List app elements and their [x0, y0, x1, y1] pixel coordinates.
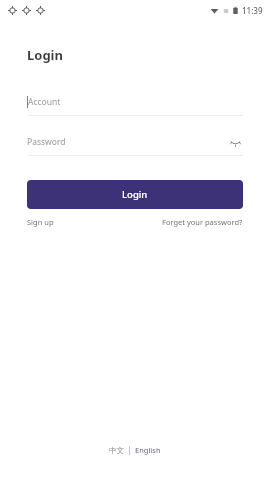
staticText: 中文	[109, 446, 124, 455]
button[interactable]: Sign up	[27, 217, 54, 227]
staticText: 11:39	[242, 5, 263, 16]
staticText: Sign up	[27, 217, 54, 227]
staticText: English	[135, 445, 161, 455]
button[interactable]: Login	[27, 180, 243, 209]
staticText: Login	[27, 46, 63, 64]
staticText: Forget your password?	[162, 217, 243, 227]
button[interactable]: Show password	[227, 134, 243, 150]
staticText: Password	[27, 136, 66, 148]
staticText: Account	[28, 96, 61, 108]
button[interactable]: 中文	[104, 446, 129, 455]
button[interactable]: Forget your password?	[162, 217, 243, 227]
button[interactable]: English	[130, 445, 166, 455]
staticText: Login	[122, 188, 148, 201]
